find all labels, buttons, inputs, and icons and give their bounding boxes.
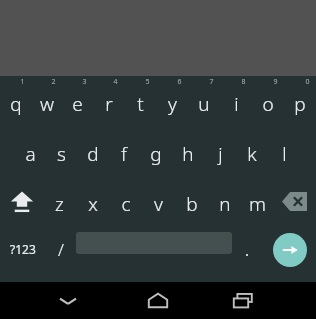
staticText: l	[282, 141, 287, 167]
staticText: a	[25, 141, 36, 167]
staticText: p	[294, 91, 306, 117]
staticText: n	[219, 191, 231, 217]
button[interactable]: Recent apps	[223, 282, 263, 319]
button[interactable]: Enter	[263, 222, 316, 278]
staticText: 2	[51, 77, 56, 87]
staticText: z	[55, 191, 64, 217]
staticText: 1	[20, 77, 25, 87]
button[interactable]: v	[142, 176, 175, 226]
staticText: ?123	[10, 241, 36, 257]
button[interactable]: g	[140, 126, 172, 176]
button[interactable]: 9	[252, 76, 284, 126]
button[interactable]: m	[241, 176, 274, 226]
button[interactable]: /	[45, 226, 76, 282]
button[interactable]: x	[76, 176, 109, 226]
staticText: 5	[145, 77, 150, 87]
staticText: x	[88, 191, 98, 217]
button[interactable]: k	[236, 126, 268, 176]
staticText: j	[218, 141, 223, 167]
button[interactable]: l	[268, 126, 300, 176]
button[interactable]: 7	[188, 76, 220, 126]
staticText: y	[168, 91, 177, 117]
staticText: 9	[273, 77, 278, 87]
staticText: f	[121, 141, 127, 167]
staticText: i	[234, 91, 239, 117]
button[interactable]: 1	[0, 76, 31, 126]
button[interactable]: b	[175, 176, 208, 226]
staticText: b	[186, 191, 198, 217]
button[interactable]: h	[172, 126, 204, 176]
button[interactable]: 4	[93, 76, 124, 126]
staticText: m	[249, 191, 266, 217]
staticText: t	[137, 91, 144, 117]
button[interactable]: Home	[138, 282, 178, 319]
button[interactable]: 5	[124, 76, 156, 126]
staticText: c	[121, 191, 131, 217]
button[interactable]: 2	[31, 76, 62, 126]
staticText: s	[57, 141, 66, 167]
staticText: 4	[113, 77, 118, 87]
button[interactable]: 0	[284, 76, 316, 126]
staticText: o	[262, 91, 274, 117]
button[interactable]: f	[108, 126, 140, 176]
staticText: v	[154, 191, 163, 217]
button[interactable]: a	[15, 126, 46, 176]
button[interactable]: 8	[220, 76, 252, 126]
staticText: k	[247, 141, 257, 167]
button[interactable]: 3	[62, 76, 93, 126]
button[interactable]: n	[208, 176, 241, 226]
staticText: r	[105, 91, 113, 117]
button[interactable]: Backspace	[274, 176, 316, 226]
staticText: 3	[82, 77, 87, 87]
staticText: 6	[177, 77, 182, 87]
staticText: w	[40, 91, 54, 117]
button[interactable]: Hide keyboard	[48, 282, 88, 319]
button[interactable]: .	[232, 226, 263, 282]
staticText: 7	[209, 77, 214, 87]
button[interactable]: ?123	[0, 226, 45, 282]
button[interactable]: s	[46, 126, 77, 176]
button[interactable]: d	[77, 126, 108, 176]
button[interactable]: Space	[76, 226, 232, 282]
staticText: /	[58, 238, 64, 261]
staticText: d	[87, 141, 99, 167]
button[interactable]: 6	[156, 76, 188, 126]
staticText: 8	[241, 77, 246, 87]
staticText: e	[72, 91, 83, 117]
staticText: q	[10, 91, 22, 117]
staticText: 0	[305, 77, 310, 87]
staticText: .	[245, 240, 250, 260]
staticText: u	[198, 91, 210, 117]
button[interactable]: c	[109, 176, 142, 226]
button[interactable]: j	[204, 126, 236, 176]
button[interactable]: z	[43, 176, 76, 226]
staticText: h	[182, 141, 194, 167]
staticText: g	[150, 141, 162, 167]
button[interactable]: Shift	[0, 176, 43, 226]
